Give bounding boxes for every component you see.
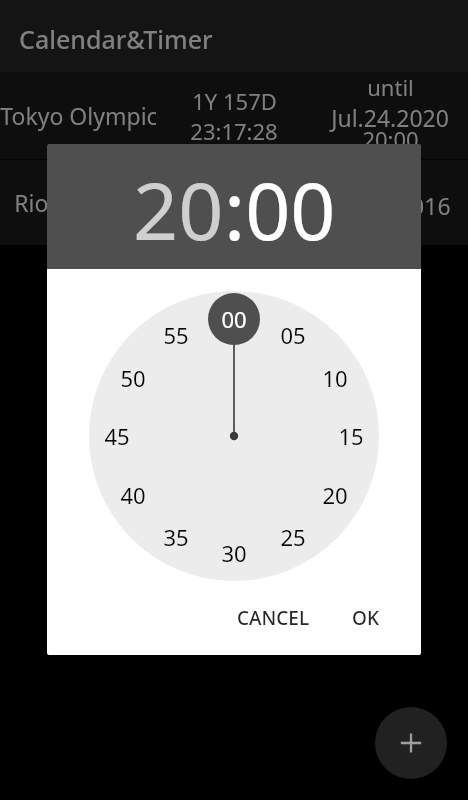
staticText: OK	[352, 605, 379, 631]
staticText: Rio Olympic	[14, 187, 143, 218]
staticText: 1Y 157D	[192, 86, 277, 116]
staticText: 0Y 000D	[192, 173, 277, 203]
staticText: Calendar&Timer	[19, 22, 213, 56]
staticText: Tokyo Olympic	[0, 100, 156, 131]
staticText: Jul.24.2020	[331, 102, 449, 133]
button[interactable]: CANCEL	[229, 597, 318, 639]
button[interactable]: Add new timer	[375, 707, 447, 779]
button[interactable]: Calendar&Timer	[0, 0, 468, 72]
staticText: :00	[224, 156, 336, 264]
staticText: 20	[133, 156, 224, 264]
staticText: 23:17:28	[190, 116, 278, 146]
staticText: 55	[163, 320, 189, 350]
staticText: until	[367, 72, 414, 102]
button[interactable]: Tokyo Olympic	[0, 72, 468, 159]
staticText: CANCEL	[237, 605, 310, 631]
staticText: 25	[280, 522, 306, 552]
staticText: 35	[163, 522, 189, 552]
button[interactable]: OK	[344, 597, 387, 639]
staticText: 20:00	[362, 124, 419, 150]
staticText: 10	[322, 363, 348, 393]
staticText: 30	[221, 538, 247, 568]
staticText: 05	[280, 320, 306, 350]
staticText: 45	[104, 421, 130, 451]
staticText: 15	[338, 421, 364, 451]
button[interactable]: Rio Olympic	[0, 160, 468, 245]
staticText: 40	[120, 480, 146, 510]
staticText: 00:00:00	[190, 203, 278, 233]
staticText: 00	[221, 304, 247, 334]
staticText: 20	[322, 480, 348, 510]
staticText: Aug.5.2016	[329, 190, 451, 221]
staticText: 50	[120, 363, 146, 393]
